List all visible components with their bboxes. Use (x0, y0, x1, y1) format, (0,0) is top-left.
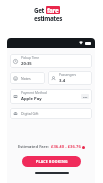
staticText: Pickup Time (21, 56, 40, 60)
staticText: Payment Method (21, 91, 47, 95)
staticText: Notes (21, 76, 31, 81)
button[interactable]: Payment Method (10, 89, 92, 104)
staticText: Digital Gift (21, 111, 39, 116)
staticText: fare (47, 6, 59, 14)
staticText: £36.40 - £36.76 (51, 144, 81, 150)
staticText: Estimated Fare: (18, 144, 51, 150)
staticText: PLACE BOOKING (36, 159, 68, 164)
button[interactable]: Digital Gift (10, 108, 92, 119)
button[interactable]: Notes (10, 72, 45, 84)
staticText: Passengers (59, 73, 77, 77)
staticText: estimates (34, 14, 62, 22)
staticText: 3-4 (59, 78, 66, 84)
staticText: 20:35 (21, 61, 32, 67)
staticText: Apple Pay (21, 96, 42, 102)
staticText: Get (34, 6, 44, 14)
button[interactable]: Pickup Time (10, 54, 92, 68)
staticText: Pay (83, 95, 88, 98)
button[interactable]: Passengers (48, 71, 92, 85)
button[interactable]: PLACE BOOKING (22, 156, 81, 167)
